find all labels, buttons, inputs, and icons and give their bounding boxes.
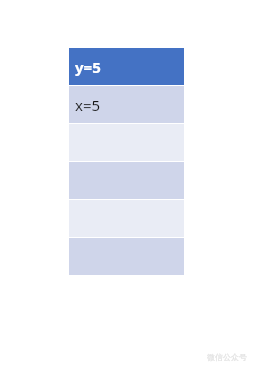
staticText: 微信公众号 (207, 352, 247, 362)
button[interactable]: Cell x equals 5 (69, 86, 184, 123)
staticText: x=5 (75, 95, 101, 115)
button[interactable]: Header cell y equals 5 (69, 48, 184, 85)
staticText: y=5 (75, 57, 101, 77)
